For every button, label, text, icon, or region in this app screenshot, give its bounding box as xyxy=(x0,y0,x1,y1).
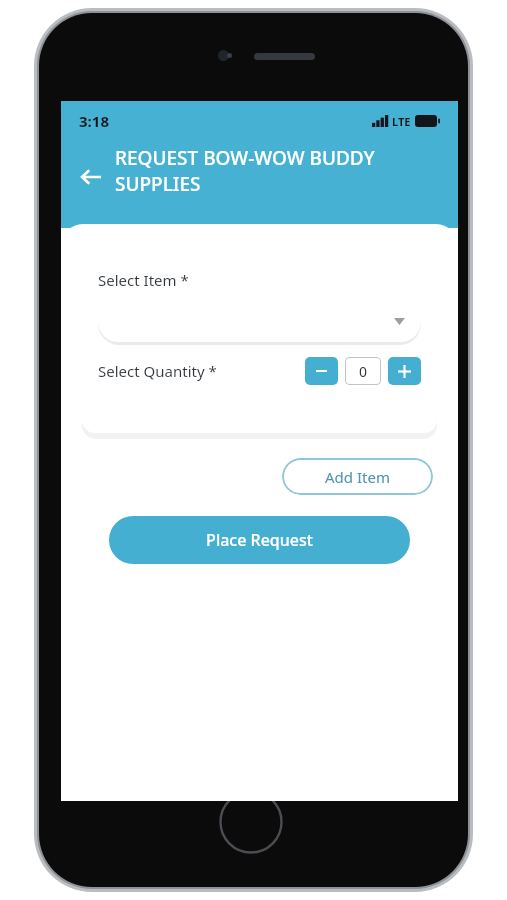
staticText: Place Request xyxy=(206,529,313,551)
button[interactable]: Decrease quantity xyxy=(305,357,338,385)
staticText: LTE xyxy=(392,114,411,129)
staticText: Select Item * xyxy=(98,270,189,290)
staticText: Add Item xyxy=(325,467,390,487)
button[interactable]: Add Item xyxy=(282,458,433,495)
staticText: 3:18 xyxy=(79,111,109,131)
button[interactable]: Place Request xyxy=(109,516,410,564)
button[interactable]: Increase quantity xyxy=(388,357,421,385)
button[interactable]: Back xyxy=(69,155,113,199)
button[interactable] xyxy=(98,301,421,342)
staticText: Select Quantity * xyxy=(98,361,217,381)
staticText: 0 xyxy=(359,362,368,381)
staticText: REQUEST BOW-WOW BUDDY SUPPLIES xyxy=(115,145,442,197)
